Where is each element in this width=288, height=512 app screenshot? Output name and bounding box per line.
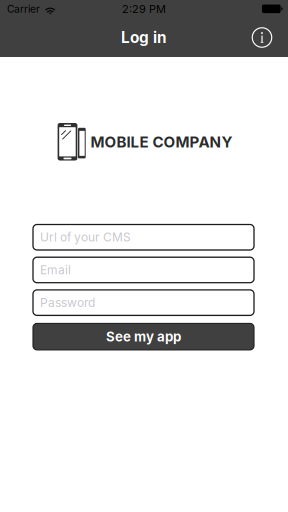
staticText: See my app <box>106 329 181 345</box>
button[interactable]: Information <box>245 18 279 57</box>
staticText: MOBILE COMPANY <box>91 133 233 151</box>
staticText: 2:29 PM <box>122 2 166 16</box>
staticText: Url of your CMS <box>40 230 131 244</box>
staticText: Carrier <box>7 3 40 15</box>
staticText: Password <box>40 295 95 310</box>
staticText: Email <box>40 263 71 277</box>
staticText: Log in <box>121 28 167 47</box>
button[interactable]: See my app <box>33 323 254 350</box>
